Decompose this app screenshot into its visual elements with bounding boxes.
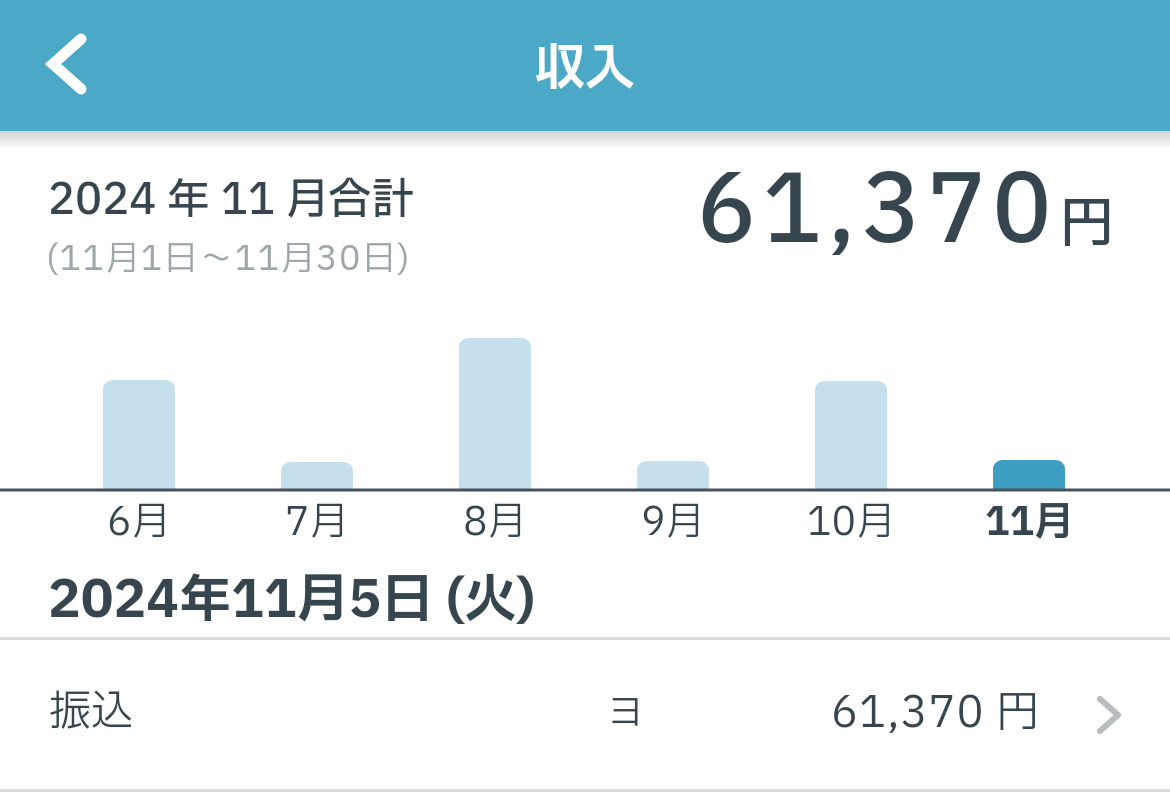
- button[interactable]: 9月: [584, 494, 762, 540]
- button[interactable]: 6月: [50, 494, 228, 540]
- staticText: 9月: [641, 494, 705, 540]
- staticText: (11月1日〜11月30日): [46, 234, 411, 285]
- button[interactable]: 11月: [940, 494, 1118, 540]
- staticText: 振込: [49, 680, 134, 743]
- staticText: ヨ: [607, 686, 644, 741]
- staticText: 8月: [463, 494, 527, 540]
- staticText: 7月: [285, 494, 349, 540]
- staticText: 61,370: [697, 142, 1058, 283]
- button[interactable]: [27, 16, 107, 111]
- staticText: 円: [1060, 185, 1114, 266]
- staticText: 11月: [985, 494, 1074, 540]
- staticText: 10月: [807, 494, 896, 540]
- staticText: 収入: [535, 32, 635, 107]
- button[interactable]: 10月: [762, 494, 940, 540]
- staticText: 6月: [107, 494, 171, 540]
- staticText: 2024 年 11 月合計: [48, 168, 415, 232]
- staticText: 2024年11月5日 (火): [48, 562, 536, 640]
- button[interactable]: 7月: [228, 494, 406, 540]
- staticText: 61,370 円: [831, 681, 1041, 745]
- button[interactable]: 8月: [406, 494, 584, 540]
- button[interactable]: 振込: [0, 640, 1170, 789]
